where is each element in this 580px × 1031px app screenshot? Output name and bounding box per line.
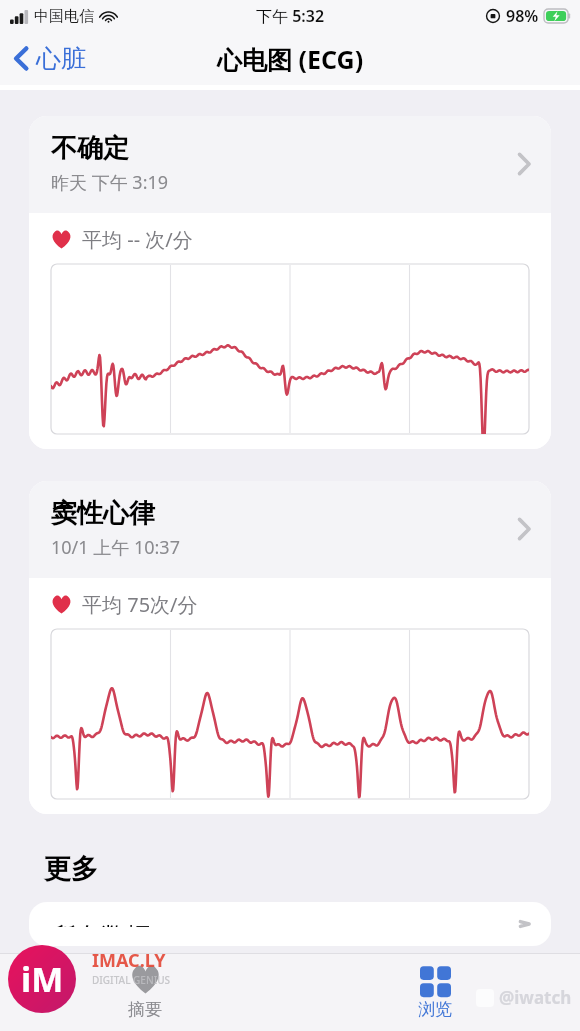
staticText: 下午 5:32 — [256, 5, 325, 27]
staticText: 中国电信 — [34, 7, 94, 26]
staticText: IMAC.LY — [92, 948, 166, 973]
staticText: DIGITAL GENIUS — [92, 973, 171, 987]
staticText: 平均 -- 次/分 — [82, 226, 193, 253]
staticText: 浏览 — [418, 999, 452, 1020]
staticText: 98% — [506, 5, 539, 27]
button[interactable]: 摘要 — [0, 957, 290, 1028]
button[interactable]: 浏览 — [290, 957, 580, 1028]
staticText: 窦性心律 — [51, 497, 155, 530]
button[interactable]: 窦性心律 — [29, 481, 551, 814]
staticText: 平均 75次/分 — [82, 591, 198, 618]
staticText: 更多 — [44, 852, 98, 886]
staticText: 昨天 下午 3:19 — [51, 170, 169, 195]
staticText: 所有数据 — [51, 921, 151, 927]
button[interactable]: 不确定 — [29, 116, 551, 449]
staticText: 心脏 — [36, 43, 86, 74]
staticText: @iwatch — [499, 986, 572, 1009]
staticText: 10/1 上午 10:37 — [51, 535, 180, 560]
staticText: 心电图 (ECG) — [217, 42, 364, 76]
staticText: 不确定 — [51, 132, 129, 165]
staticText: 摘要 — [128, 999, 162, 1020]
staticText: iM — [21, 956, 64, 1002]
button[interactable]: 所有数据 — [29, 902, 551, 946]
button[interactable]: 心脏 — [0, 37, 96, 80]
